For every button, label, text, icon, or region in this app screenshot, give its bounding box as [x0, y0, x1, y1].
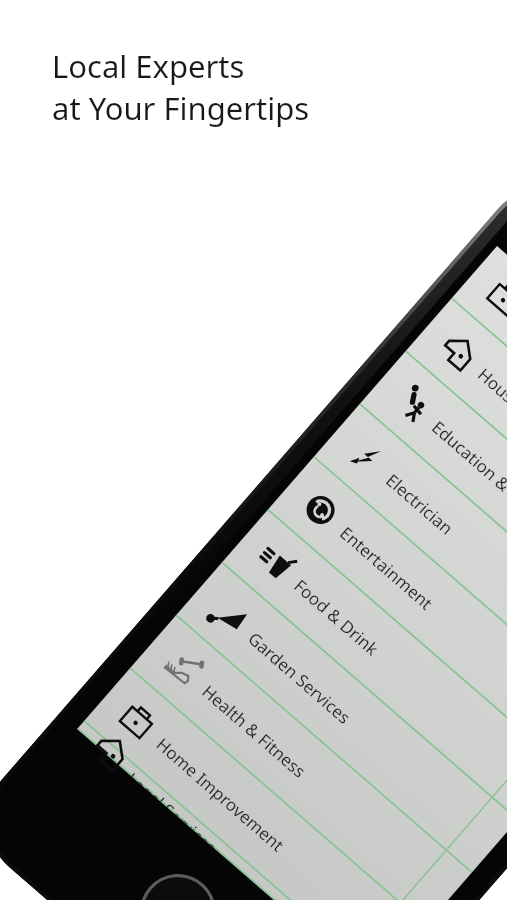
button[interactable]: Phone showing service categories [0, 162, 507, 900]
button[interactable]: Business Services [451, 246, 507, 556]
staticText: Household [473, 363, 507, 437]
button[interactable]: Food & Drink [221, 510, 507, 820]
staticText: Education & Schools [427, 416, 507, 539]
button[interactable]: Legal Services [77, 721, 380, 900]
button[interactable]: Household [405, 299, 507, 609]
button[interactable]: Garden Services [176, 563, 507, 873]
button[interactable]: Electrician [313, 404, 507, 714]
staticText: Garden Services [243, 627, 356, 729]
staticText: Health & Fitness [198, 680, 311, 782]
staticText: Electrician [381, 468, 458, 540]
staticText: at Your Fingertips [52, 87, 310, 129]
button[interactable]: Home Improvement [84, 669, 425, 900]
staticText: Home Improvement [152, 733, 289, 856]
button[interactable]: Entertainment [267, 457, 507, 767]
staticText: Food & Drink [289, 574, 384, 660]
button[interactable]: Education & Schools [359, 352, 507, 662]
button[interactable]: Home [124, 858, 231, 900]
staticText: Entertainment [335, 521, 438, 615]
button[interactable]: Health & Fitness [130, 616, 471, 900]
staticText: Local Experts [52, 45, 245, 87]
staticText: Legal Services [130, 767, 222, 849]
